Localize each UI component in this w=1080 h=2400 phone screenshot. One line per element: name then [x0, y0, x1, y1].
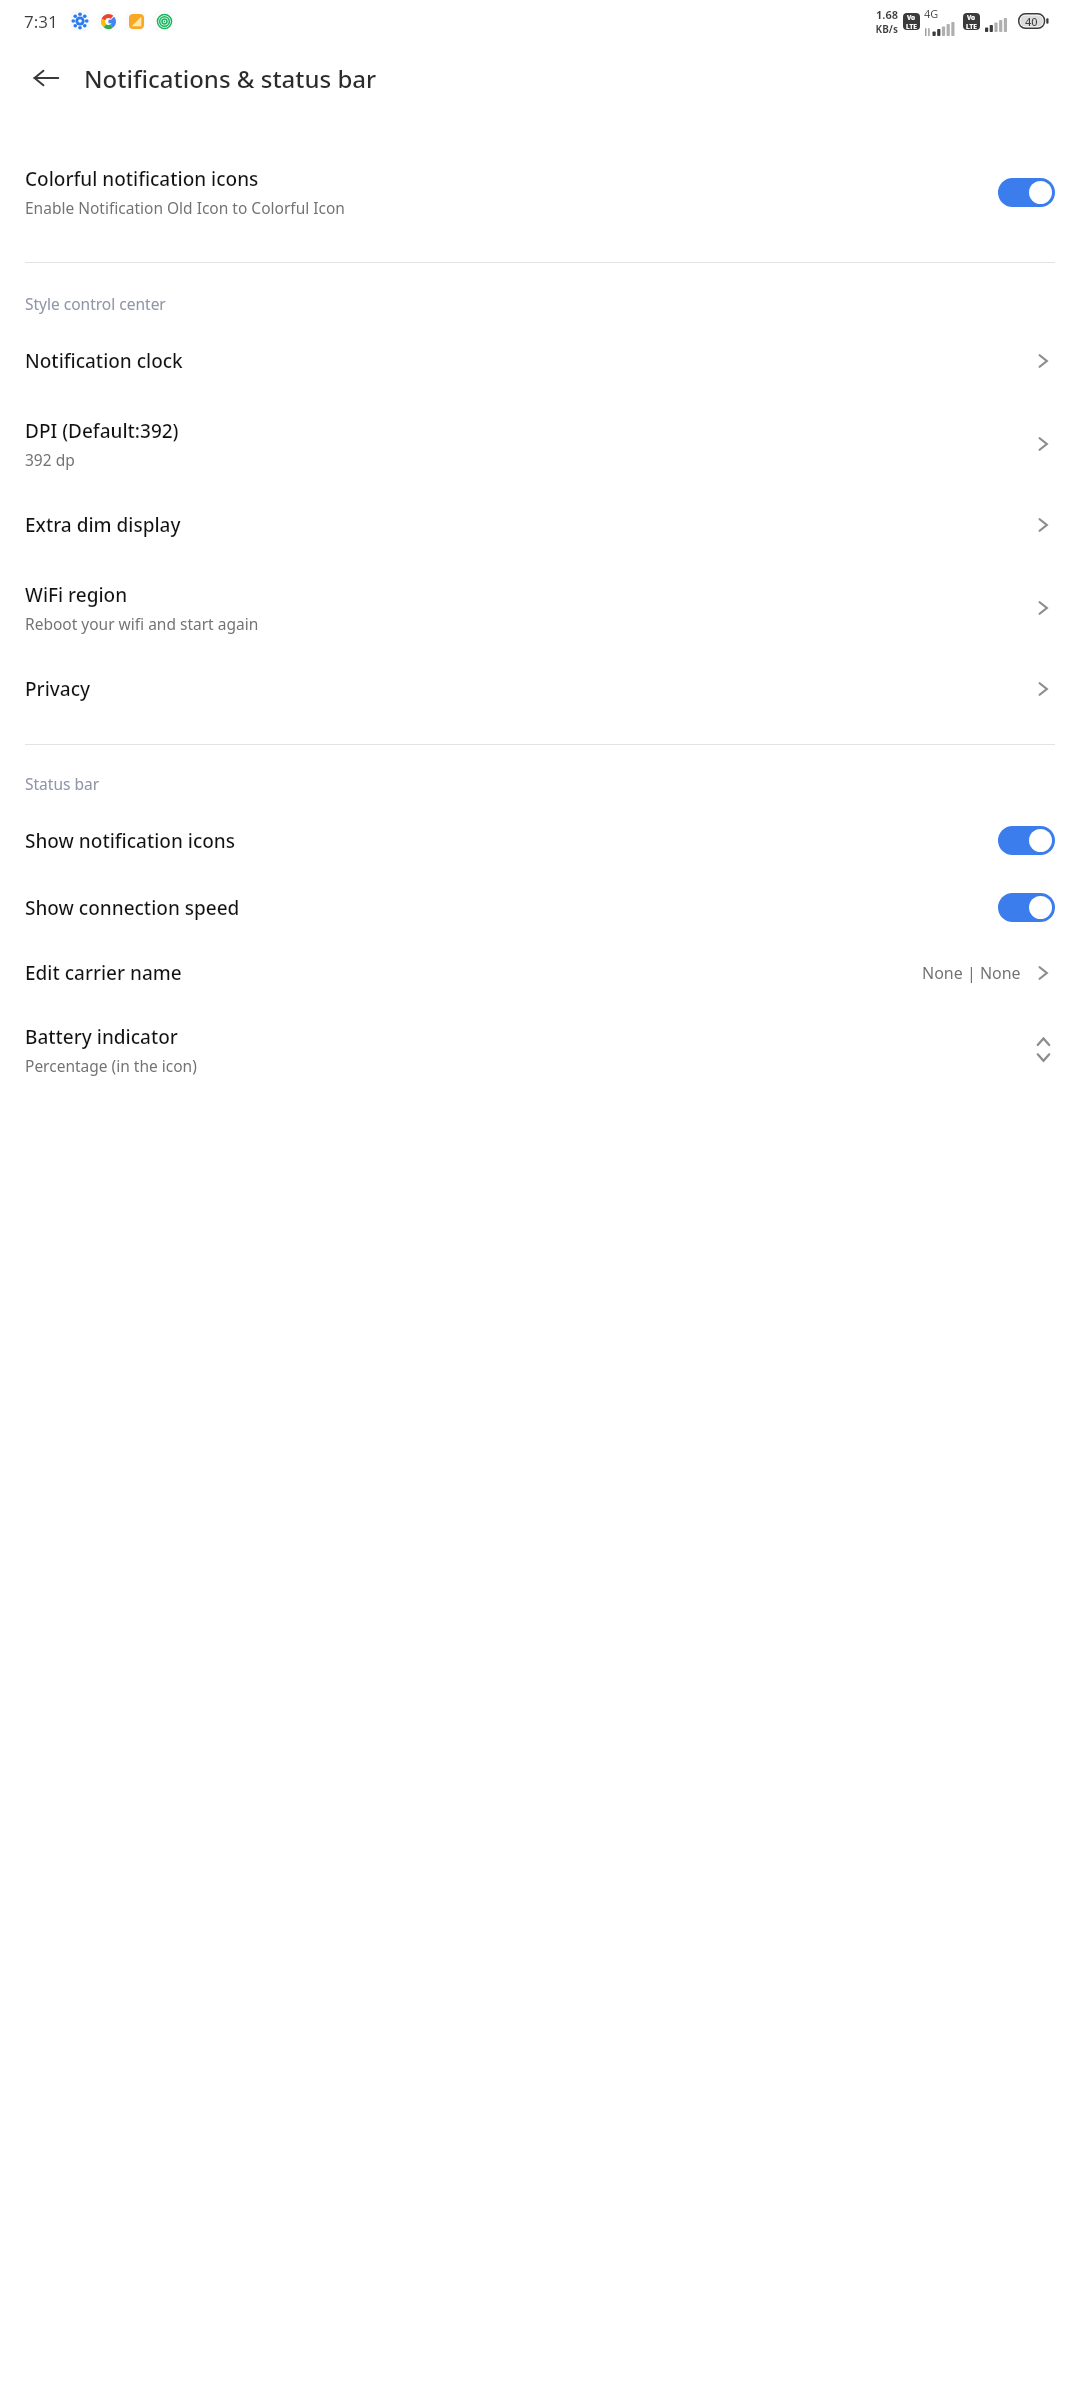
staticText: LTE — [966, 22, 977, 30]
staticText: KB/s — [875, 22, 898, 36]
staticText: DPI (Default:392) — [25, 418, 179, 444]
button[interactable]: Extra dim display — [0, 500, 1080, 550]
other: Open — [1031, 349, 1055, 373]
staticText: 1.68 — [876, 7, 898, 22]
other: Open — [1031, 513, 1055, 537]
staticText: Reboot your wifi and start again — [25, 613, 259, 634]
staticText: None | None — [922, 962, 1021, 984]
staticText: Enable Notification Old Icon to Colorful… — [25, 197, 345, 218]
other: Open — [1031, 677, 1055, 701]
button[interactable]: Privacy — [0, 664, 1080, 714]
staticText: Privacy — [25, 676, 90, 702]
staticText: 7:31 — [24, 10, 58, 33]
staticText: 392 dp — [25, 449, 75, 470]
staticText: Vo — [967, 13, 976, 22]
button[interactable]: Toggle — [998, 178, 1055, 207]
other: Open — [1031, 961, 1055, 985]
button[interactable]: DPI (Default:392) — [0, 406, 1080, 482]
staticText: 40 — [1025, 14, 1038, 29]
staticText: Notification clock — [25, 348, 183, 374]
staticText: Battery indicator — [25, 1024, 178, 1050]
staticText: Extra dim display — [25, 512, 181, 538]
button[interactable]: Show connection speed — [0, 881, 1080, 934]
staticText: Colorful notification icons — [25, 166, 259, 192]
button[interactable]: Toggle — [998, 893, 1055, 922]
other: Open — [1031, 432, 1055, 456]
staticText: Style control center — [25, 293, 166, 314]
staticText: 4G — [924, 6, 939, 21]
button[interactable]: Change battery indicator — [1031, 1032, 1055, 1068]
button[interactable]: Toggle — [998, 826, 1055, 855]
button[interactable]: Edit carrier name — [0, 948, 1080, 998]
staticText: Show connection speed — [25, 895, 240, 921]
staticText: Notifications & status bar — [84, 62, 377, 95]
button[interactable]: Battery indicator — [0, 1012, 1080, 1088]
button[interactable]: Colorful notification icons — [0, 154, 1080, 230]
button[interactable]: WiFi region — [0, 570, 1080, 646]
other: Open — [1031, 596, 1055, 620]
staticText: Status bar — [25, 773, 100, 794]
staticText: WiFi region — [25, 582, 128, 608]
staticText: LTE — [906, 22, 917, 30]
staticText: Show notification icons — [25, 828, 235, 854]
staticText: Percentage (in the icon) — [25, 1055, 197, 1076]
button[interactable]: Notification clock — [0, 336, 1080, 386]
staticText: Edit carrier name — [25, 960, 182, 986]
button[interactable]: Show notification icons — [0, 814, 1080, 867]
button[interactable]: Back — [22, 54, 70, 102]
staticText: Vo — [907, 13, 916, 22]
